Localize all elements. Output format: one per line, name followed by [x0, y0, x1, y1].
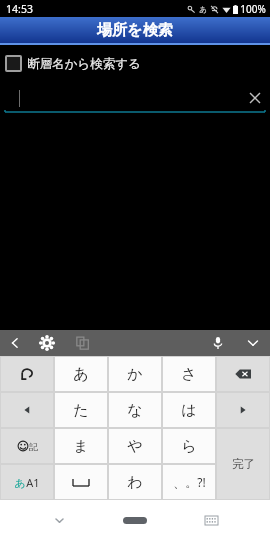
button[interactable]: ま: [55, 429, 107, 463]
staticText: 記: [29, 441, 38, 452]
staticText: 場所を検索: [97, 21, 173, 40]
button[interactable]: Hide keyboard: [236, 330, 270, 356]
staticText: は: [181, 401, 197, 420]
button[interactable]: あ: [55, 357, 107, 391]
button[interactable]: あ: [1, 465, 53, 499]
button[interactable]: Space: [55, 465, 107, 499]
button[interactable]: Cursor right: [217, 393, 269, 427]
staticText: さ: [181, 365, 197, 384]
button[interactable]: Clipboard: [64, 330, 102, 356]
staticText: あ: [199, 5, 207, 14]
button[interactable]: Cursor left: [1, 393, 53, 427]
staticText: 100%: [240, 2, 266, 16]
button[interactable]: Delete: [217, 357, 269, 391]
staticText: ら: [181, 437, 197, 456]
staticText: A1: [26, 475, 40, 490]
staticText: 、。?!: [173, 474, 206, 490]
staticText: た: [73, 401, 89, 420]
button[interactable]: は: [163, 393, 215, 427]
button[interactable]: や: [109, 429, 161, 463]
button[interactable]: Home: [105, 509, 165, 531]
staticText: か: [127, 365, 143, 384]
button[interactable]: か: [109, 357, 161, 391]
button[interactable]: Switch keyboard: [194, 503, 228, 537]
staticText: あ: [14, 476, 26, 490]
button[interactable]: 完了: [217, 429, 269, 499]
staticText: ま: [73, 437, 89, 456]
button[interactable]: な: [109, 393, 161, 427]
button[interactable]: Voice input: [200, 330, 236, 356]
button[interactable]: Emoji and symbols: [1, 429, 53, 463]
button[interactable]: た: [55, 393, 107, 427]
staticText: わ: [127, 473, 143, 492]
button[interactable]: 、。?!: [163, 465, 215, 499]
staticText: 14:53: [6, 2, 33, 16]
button[interactable]: ら: [163, 429, 215, 463]
button[interactable]: Back: [42, 503, 76, 537]
button[interactable]: Clear text: [246, 89, 264, 107]
button[interactable]: Undo: [1, 357, 53, 391]
button[interactable]: わ: [109, 465, 161, 499]
button[interactable]: さ: [163, 357, 215, 391]
button[interactable]: Settings: [30, 330, 64, 356]
staticText: な: [127, 401, 143, 420]
staticText: 完了: [232, 457, 255, 471]
staticText: あ: [73, 365, 89, 384]
staticText: や: [127, 437, 143, 456]
button[interactable]: Back: [0, 330, 30, 356]
button[interactable]: 断層名から検索する: [0, 55, 270, 72]
staticText: 断層名から検索する: [27, 56, 141, 72]
